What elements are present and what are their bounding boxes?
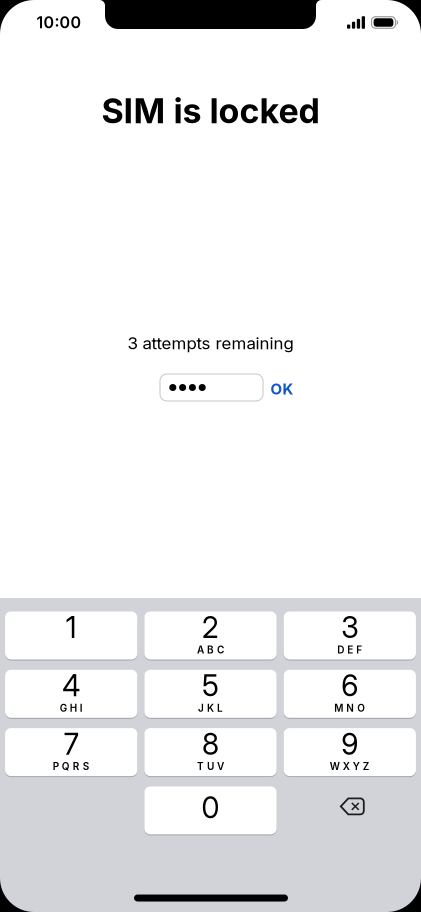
staticText: GHI bbox=[60, 702, 83, 714]
staticText: DEF bbox=[337, 644, 362, 656]
button[interactable]: 5 bbox=[144, 669, 277, 718]
staticText: TUV bbox=[197, 760, 224, 772]
staticText: 9 bbox=[341, 727, 358, 761]
staticText: PQRS bbox=[53, 760, 90, 772]
staticText: 5 bbox=[202, 669, 219, 703]
button[interactable]: 2 bbox=[144, 611, 277, 660]
button[interactable]: 6 bbox=[284, 669, 416, 718]
staticText: 10:00 bbox=[36, 13, 81, 32]
button[interactable]: Delete bbox=[284, 786, 416, 835]
button[interactable]: SIM PIN bbox=[160, 374, 263, 401]
staticText: 8 bbox=[202, 727, 219, 761]
staticText: 4 bbox=[62, 669, 80, 703]
staticText: OK bbox=[270, 380, 293, 398]
button[interactable]: 4 bbox=[5, 669, 137, 718]
staticText: 0 bbox=[201, 791, 219, 825]
staticText: 6 bbox=[341, 669, 358, 703]
staticText: 7 bbox=[64, 727, 79, 761]
staticText: WXYZ bbox=[330, 760, 370, 772]
button[interactable]: 7 bbox=[5, 728, 137, 777]
button[interactable]: 3 bbox=[284, 611, 416, 660]
staticText: MNO bbox=[334, 702, 365, 714]
button[interactable]: 8 bbox=[144, 728, 277, 777]
staticText: 3 attempts remaining bbox=[127, 333, 293, 353]
button[interactable]: 9 bbox=[284, 728, 416, 777]
staticText: SIM is locked bbox=[101, 91, 319, 131]
staticText: 2 bbox=[202, 610, 219, 645]
button[interactable]: 0 bbox=[144, 786, 277, 835]
button[interactable]: OK bbox=[264, 375, 300, 403]
staticText: 1 bbox=[66, 610, 77, 645]
staticText: 3 bbox=[341, 610, 358, 645]
button[interactable]: 1 bbox=[5, 611, 137, 660]
staticText: ABC bbox=[197, 644, 224, 656]
staticText: JKL bbox=[198, 702, 223, 714]
